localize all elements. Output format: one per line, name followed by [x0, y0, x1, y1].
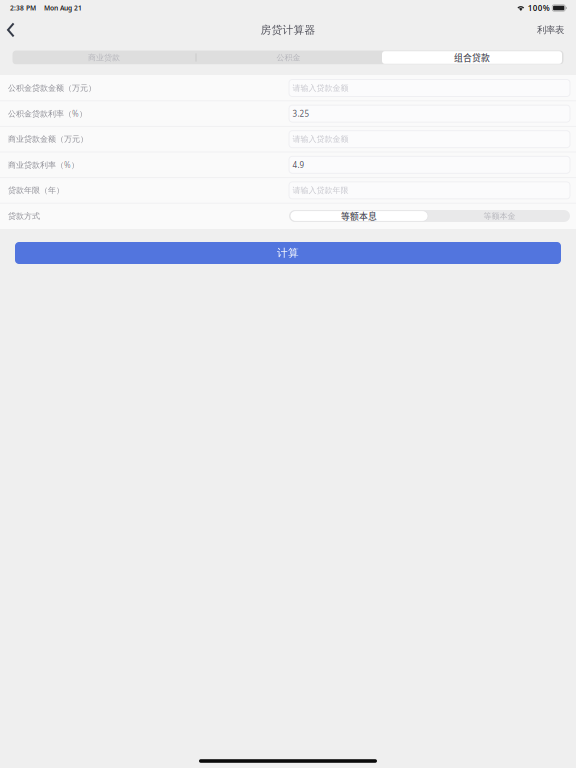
staticText: 商业贷款利率（%） [8, 159, 79, 170]
button[interactable]: 请输入贷款金额 [289, 76, 576, 100]
button[interactable]: 公积金 [196, 50, 380, 64]
button[interactable]: 利率表 [523, 16, 576, 44]
staticText: 100% [528, 3, 550, 13]
staticText: 贷款年限（年） [8, 185, 64, 195]
staticText: 请输入贷款金额 [292, 134, 348, 144]
staticText: 计算 [277, 246, 299, 259]
staticText: 商业贷款金额（万元） [8, 134, 88, 144]
staticText: 利率表 [537, 24, 564, 36]
staticText: 组合贷款 [454, 51, 490, 64]
staticText: 4.9 [292, 159, 304, 170]
button[interactable]: 请输入贷款金额 [289, 127, 576, 151]
staticText: 请输入贷款金额 [292, 83, 348, 93]
staticText: Mon Aug 21 [44, 4, 82, 12]
button[interactable]: 等额本金 [429, 210, 570, 222]
staticText: 房贷计算器 [260, 23, 315, 36]
button[interactable]: Back [0, 16, 29, 44]
staticText: 等额本息 [341, 210, 377, 222]
staticText: 商业贷款 [88, 53, 120, 62]
staticText: 公积金贷款利率（%） [8, 108, 87, 119]
staticText: 3.25 [292, 108, 309, 119]
button[interactable]: 3.25 [289, 101, 576, 126]
button[interactable]: 请输入贷款年限 [289, 178, 576, 203]
button[interactable]: 计算 [0, 242, 576, 264]
staticText: 贷款方式 [8, 211, 40, 221]
button[interactable]: 组合贷款 [380, 50, 563, 64]
staticText: 2:38 PM [10, 4, 36, 12]
staticText: 等额本金 [483, 211, 515, 221]
staticText: 公积金贷款金额（万元） [8, 83, 96, 93]
button[interactable]: 4.9 [289, 152, 576, 177]
button[interactable]: 商业贷款 [12, 50, 195, 64]
staticText: 请输入贷款年限 [292, 185, 348, 195]
staticText: 公积金 [276, 53, 300, 62]
button[interactable]: 等额本息 [289, 210, 429, 222]
